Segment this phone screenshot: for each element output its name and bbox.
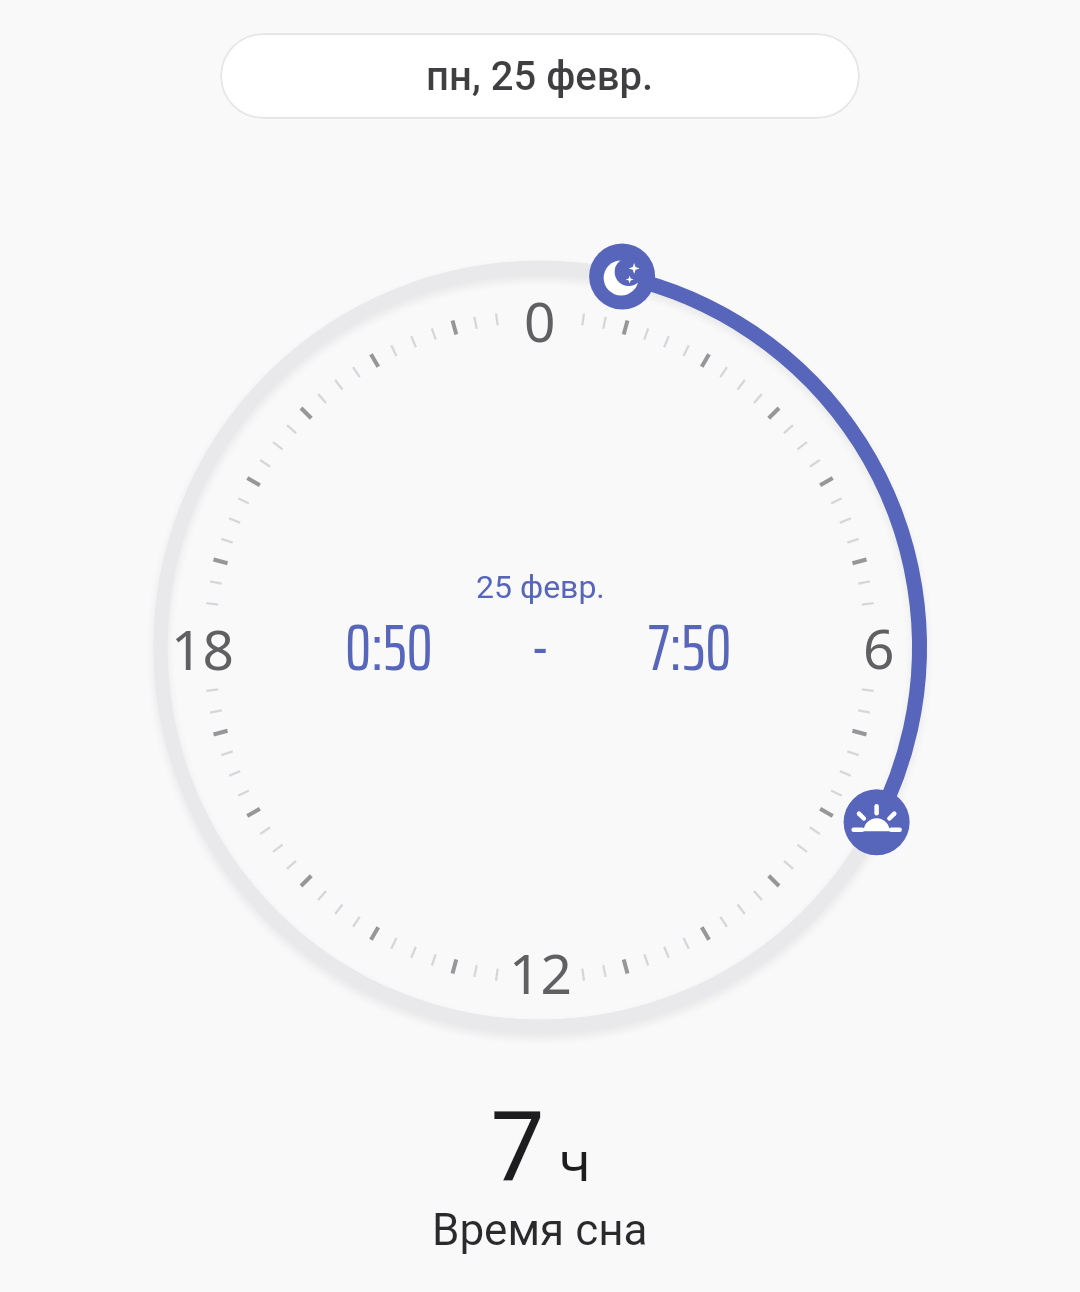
button[interactable]: пн, 25 февр. [220, 33, 860, 119]
button[interactable] [844, 789, 910, 855]
staticText: 18 [171, 611, 234, 686]
staticText: 12 [509, 935, 572, 1010]
staticText: 6 [863, 610, 895, 685]
staticText: 0 [524, 283, 556, 358]
staticText: пн, 25 февр. [426, 53, 654, 100]
staticText: Время сна [432, 1204, 648, 1256]
staticText: 25 февр. [476, 568, 605, 606]
button[interactable] [589, 243, 655, 309]
staticText: - [531, 595, 550, 699]
staticText: 7:50 [648, 595, 732, 699]
staticText: 0:50 [345, 595, 433, 699]
staticText: 7 ч [490, 1078, 591, 1209]
